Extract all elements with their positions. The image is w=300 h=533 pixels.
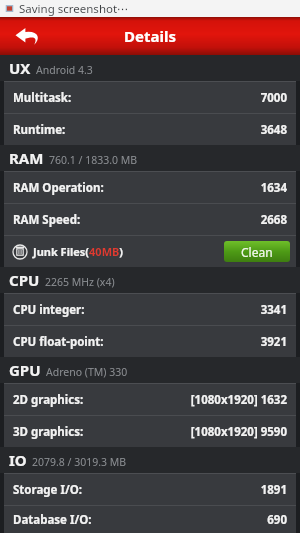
staticText: 7000: [260, 90, 287, 106]
staticText: [1080x1920] 1632: [190, 392, 287, 408]
staticText: Saving screenshot⋯: [19, 1, 129, 17]
staticText: IO: [9, 450, 27, 470]
button[interactable]: RAM Operation:: [4, 172, 296, 203]
staticText: RAM Operation:: [13, 180, 104, 196]
staticText: 1891: [260, 482, 287, 498]
staticText: [1080x1920] 9590: [190, 424, 287, 440]
staticText: Android 4.3: [36, 63, 93, 77]
button[interactable]: Database I/O:: [4, 506, 296, 533]
staticText: Junk Files(40MB): [33, 244, 124, 259]
staticText: UX: [9, 58, 31, 78]
button[interactable]: 2D graphics:: [4, 384, 296, 415]
staticText: 760.1 / 1833.0 MB: [49, 153, 138, 167]
staticText: 2668: [260, 212, 287, 228]
staticText: 2079.8 / 3019.3 MB: [32, 455, 127, 469]
button[interactable]: CPU float-point:: [4, 326, 296, 357]
staticText: RAM Speed:: [13, 212, 81, 228]
staticText: CPU: [9, 270, 40, 290]
button[interactable]: Back: [0, 17, 56, 55]
button[interactable]: 3D graphics:: [4, 416, 296, 447]
staticText: CPU integer:: [13, 302, 85, 318]
staticText: 3D graphics:: [13, 424, 84, 440]
staticText: Multitask:: [13, 90, 72, 106]
staticText: Runtime:: [13, 122, 66, 138]
staticText: GPU: [9, 360, 41, 380]
button[interactable]: Multitask:: [4, 82, 296, 113]
staticText: RAM: [9, 148, 44, 168]
button[interactable]: Clean: [224, 241, 290, 262]
staticText: 3648: [260, 122, 287, 138]
staticText: Storage I/O:: [13, 482, 83, 498]
button[interactable]: Storage I/O:: [4, 474, 296, 505]
staticText: 1634: [260, 180, 287, 196]
staticText: 690: [267, 512, 287, 528]
staticText: 2265 MHz (x4): [45, 275, 115, 289]
button[interactable]: RAM Speed:: [4, 204, 296, 235]
button[interactable]: Runtime:: [4, 114, 296, 145]
staticText: Details: [124, 26, 176, 46]
staticText: Clean: [241, 244, 273, 260]
staticText: 2D graphics:: [13, 392, 84, 408]
button[interactable]: CPU integer:: [4, 294, 296, 325]
staticText: 3921: [260, 334, 287, 350]
staticText: Adreno (TM) 330: [46, 365, 128, 379]
staticText: CPU float-point:: [13, 334, 104, 350]
staticText: 3341: [260, 302, 287, 318]
staticText: Database I/O:: [13, 512, 92, 528]
